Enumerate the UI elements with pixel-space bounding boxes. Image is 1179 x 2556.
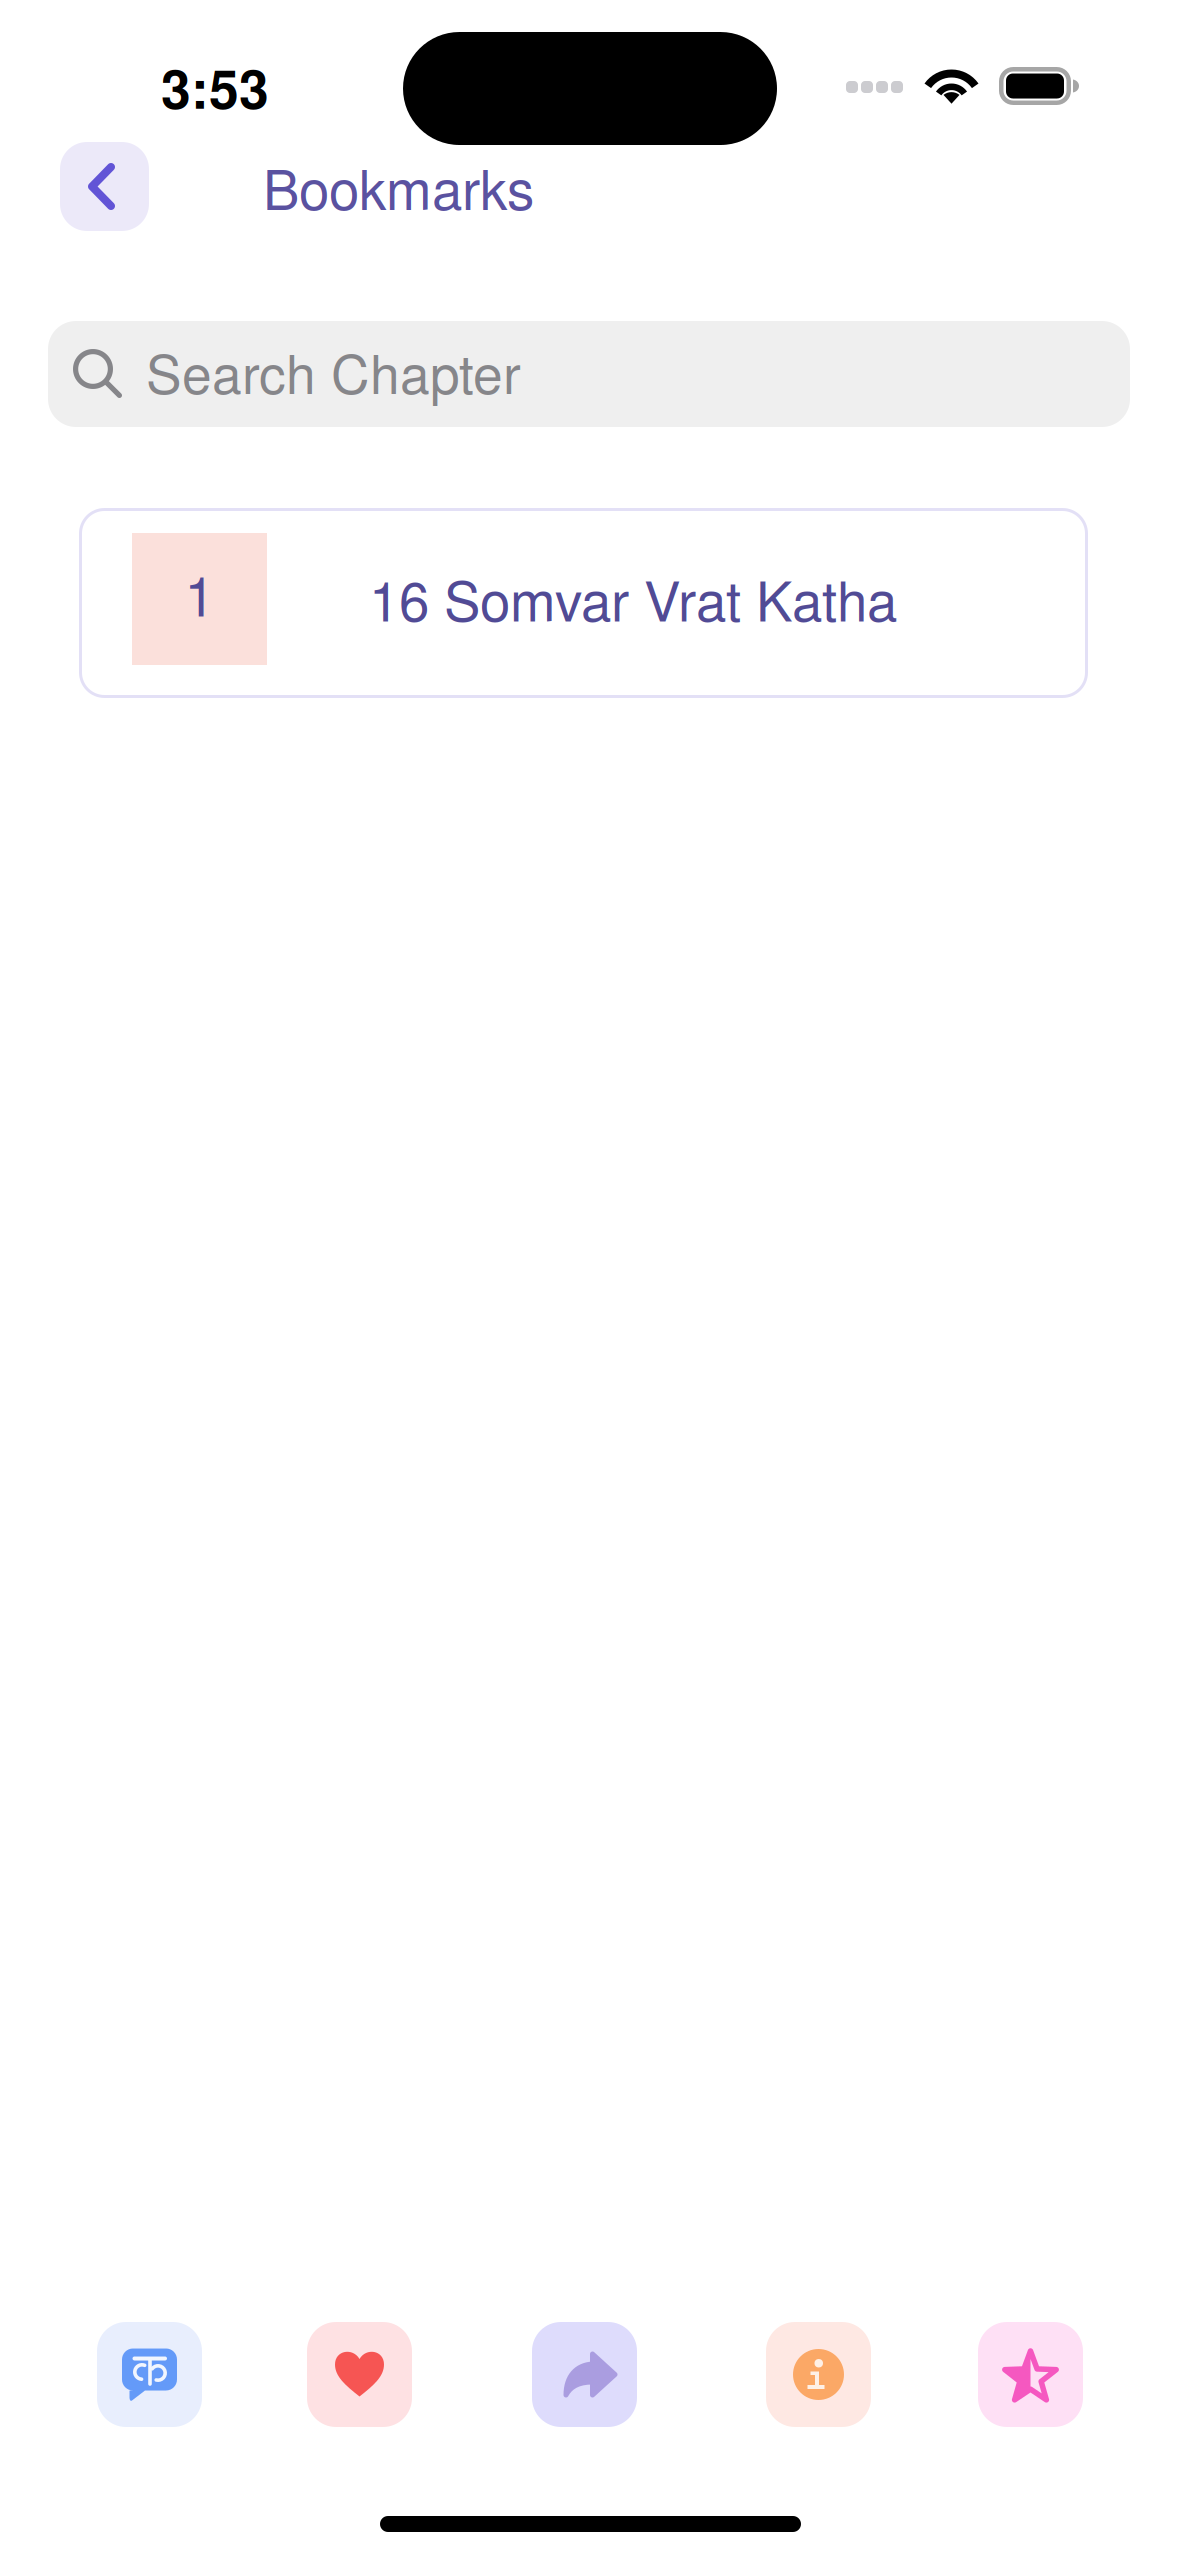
button[interactable]: Favorite [307, 2322, 412, 2427]
button[interactable]: Rate [978, 2322, 1083, 2427]
staticText: 3:53 [161, 49, 269, 125]
button[interactable]: Search Chapter [48, 321, 1130, 427]
staticText: 1 [184, 554, 214, 632]
staticText: 16 Somvar Vrat Katha [369, 559, 897, 637]
staticText: Bookmarks [263, 147, 534, 226]
button[interactable]: Translate [97, 2322, 202, 2427]
button[interactable]: Information [766, 2322, 871, 2427]
button[interactable]: 1 [79, 508, 1088, 698]
button[interactable]: Back [60, 142, 149, 231]
staticText: Search Chapter [146, 333, 521, 409]
button[interactable]: Share [532, 2322, 637, 2427]
